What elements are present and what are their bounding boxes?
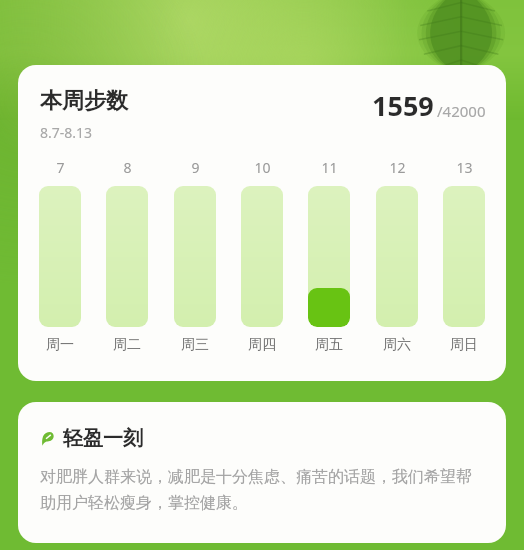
other: 轻盈一刻 xyxy=(40,431,55,446)
staticText: 周五 xyxy=(315,336,343,354)
staticText: 8 xyxy=(123,158,132,177)
staticText: 7 xyxy=(56,158,65,177)
staticText: 周二 xyxy=(113,336,141,354)
staticText: 8.7-8.13 xyxy=(40,123,93,142)
staticText: 对肥胖人群来说，减肥是十分焦虑、痛苦的话题，我们希望帮助用户轻松瘦身，掌控健康。 xyxy=(40,467,484,513)
button[interactable]: 本周步数 xyxy=(18,65,506,381)
staticText: 轻盈一刻 xyxy=(63,426,143,451)
staticText: 周一 xyxy=(46,336,74,354)
staticText: 11 xyxy=(321,158,338,177)
button[interactable]: 轻盈一刻 xyxy=(18,402,506,543)
staticText: 10 xyxy=(254,158,271,177)
staticText: /42000 xyxy=(437,101,486,121)
staticText: 周六 xyxy=(383,336,411,354)
staticText: 9 xyxy=(191,158,200,177)
staticText: 周日 xyxy=(450,336,478,354)
staticText: 本周步数 xyxy=(40,87,128,115)
staticText: 12 xyxy=(389,158,406,177)
staticText: 1559 xyxy=(372,87,434,124)
staticText: 13 xyxy=(456,158,473,177)
staticText: 周四 xyxy=(248,336,276,354)
staticText: 周三 xyxy=(181,336,209,354)
